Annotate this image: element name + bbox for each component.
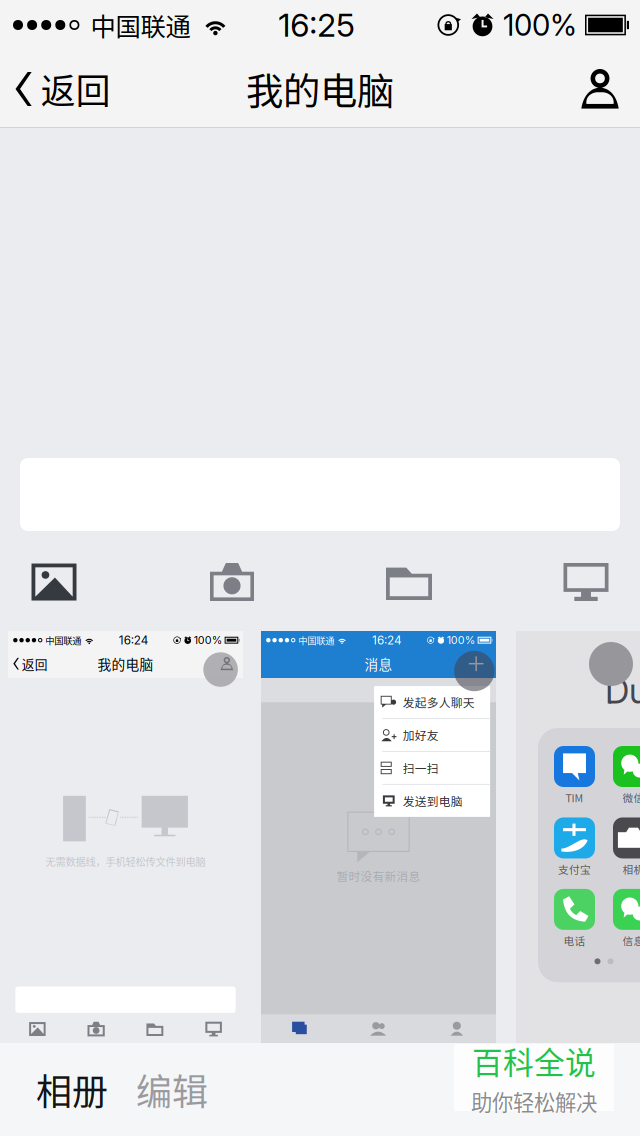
staticText: 百科全说 <box>472 1038 596 1083</box>
staticText: 中国联通 <box>90 7 190 43</box>
staticText: 相册 <box>36 1063 108 1115</box>
button[interactable]: Camera <box>182 554 282 610</box>
staticText: 100% <box>447 634 476 647</box>
staticText: 发起多人聊天 <box>403 693 475 710</box>
button[interactable]: Screenshot 3 <box>516 631 640 1043</box>
button[interactable]: Account <box>560 50 640 128</box>
staticText: 中国联通 <box>298 633 334 647</box>
staticText: 助你轻松解决 <box>471 1086 597 1117</box>
button[interactable]: Photos <box>4 554 104 610</box>
staticText: 微信 <box>622 790 640 805</box>
staticText: 16:24 <box>119 633 149 647</box>
button[interactable]: Screenshot 2 <box>261 631 496 1043</box>
button[interactable]: 编辑 <box>122 1043 222 1136</box>
staticText: 无需数据线，手机轻松传文件到电脑 <box>45 854 205 869</box>
staticText: 相机 <box>622 861 640 877</box>
button[interactable]: Screenshot 1 <box>8 631 243 1043</box>
staticText: 信息 <box>622 933 640 948</box>
button[interactable]: Computer <box>536 554 636 610</box>
staticText: 支付宝 <box>558 861 591 877</box>
staticText: 返回 <box>22 654 48 673</box>
staticText: 我的电脑 <box>246 62 394 116</box>
staticText: 电话 <box>563 933 585 948</box>
staticText: 扫一扫 <box>403 759 439 776</box>
staticText: 中国联通 <box>45 633 81 647</box>
button[interactable]: 相册 <box>0 1043 122 1136</box>
staticText: 加好友 <box>403 726 439 743</box>
staticText: 16:24 <box>372 633 402 647</box>
staticText: 16:25 <box>278 6 355 44</box>
staticText: 我的电脑 <box>97 654 153 674</box>
staticText: 发送到电脑 <box>403 792 463 809</box>
staticText: 消息 <box>364 654 392 674</box>
button[interactable]: 返回 <box>0 50 125 128</box>
staticText: Dus <box>605 670 640 712</box>
staticText: 编辑 <box>136 1063 208 1115</box>
button[interactable]: Files <box>359 554 459 610</box>
staticText: 返回 <box>41 64 111 114</box>
staticText: 100% <box>503 7 577 43</box>
staticText: 暂时没有新消息 <box>336 867 420 884</box>
staticText: TIM <box>565 790 583 805</box>
staticText: 100% <box>194 634 223 647</box>
